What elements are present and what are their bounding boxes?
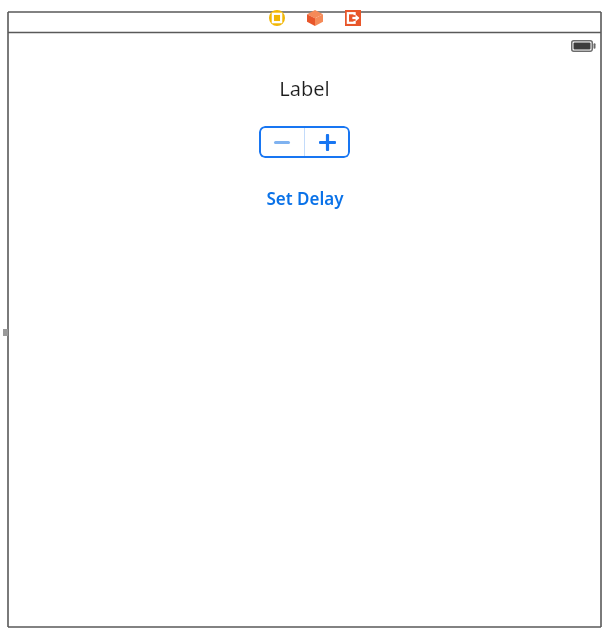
button[interactable]: Increase [305,126,350,158]
button[interactable]: Record [269,10,285,26]
staticText: Label [279,75,330,102]
other: Battery [571,40,596,52]
button[interactable]: Package [307,10,323,26]
button[interactable]: Decrease [259,126,304,158]
staticText: Set Delay [266,187,344,210]
button[interactable]: Set Delay [266,187,344,210]
button[interactable]: Export [345,10,361,26]
